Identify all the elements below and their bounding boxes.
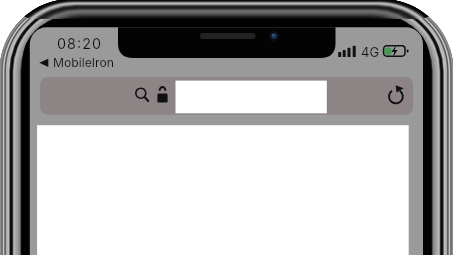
- staticText: MobileIron: [53, 55, 114, 70]
- staticText: 4G: [361, 44, 380, 60]
- staticText: 08:20: [57, 35, 103, 52]
